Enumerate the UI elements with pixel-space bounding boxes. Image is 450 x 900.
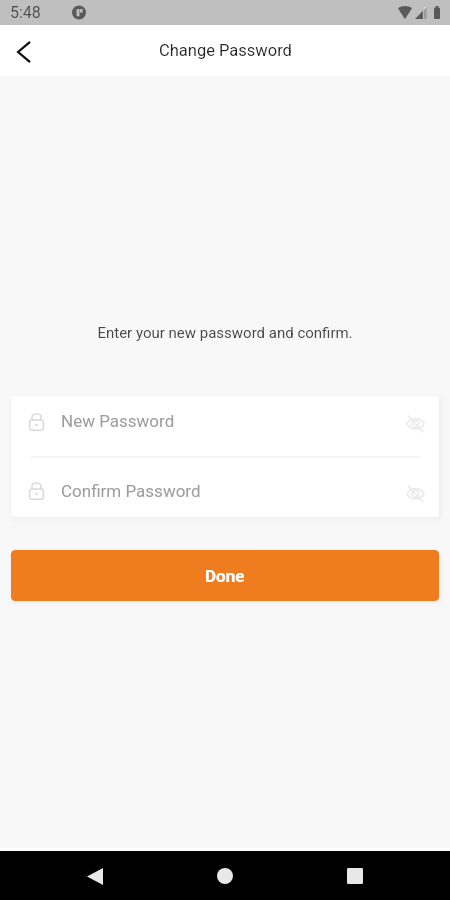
staticText: New Password (61, 411, 393, 431)
staticText: Enter your new password and confirm. (0, 324, 450, 342)
button[interactable]: Home (201, 852, 249, 900)
staticText: Change Password (159, 41, 292, 60)
button[interactable]: Toggle password visibility (393, 468, 433, 508)
button[interactable]: Back (0, 27, 48, 75)
staticText: Done (205, 566, 245, 586)
button[interactable]: Done (11, 550, 439, 601)
button[interactable]: Recent apps (331, 852, 379, 900)
staticText: 5:48 (10, 3, 41, 22)
button[interactable]: Back (71, 852, 119, 900)
button[interactable]: Toggle password visibility (393, 406, 433, 446)
button[interactable]: New Password (11, 396, 439, 456)
button[interactable]: Confirm Password (11, 458, 439, 517)
staticText: Confirm Password (61, 481, 393, 501)
